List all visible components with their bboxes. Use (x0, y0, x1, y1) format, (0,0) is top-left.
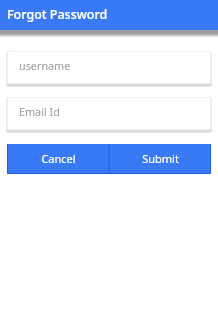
button[interactable]: Cancel (7, 144, 109, 174)
button[interactable]: Submit (109, 144, 211, 174)
button[interactable]: Email Id (7, 97, 211, 130)
staticText: Forgot Password (7, 6, 108, 23)
staticText: Email Id (19, 104, 60, 119)
staticText: Submit (142, 151, 179, 166)
staticText: username (19, 58, 71, 73)
staticText: Cancel (41, 151, 76, 166)
button[interactable]: username (7, 51, 211, 84)
